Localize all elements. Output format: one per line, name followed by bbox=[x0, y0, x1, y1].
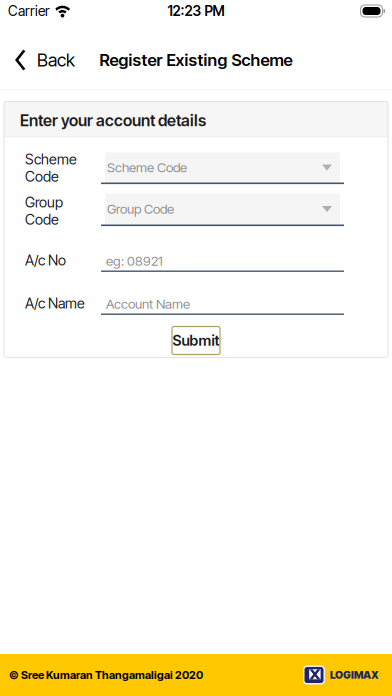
staticText: A/c No bbox=[25, 251, 66, 269]
staticText: Enter your account details bbox=[20, 111, 206, 130]
button[interactable]: Submit bbox=[172, 326, 220, 354]
staticText: Submit bbox=[172, 332, 219, 349]
staticText: Code bbox=[25, 168, 59, 185]
staticText: Carrier bbox=[8, 2, 50, 19]
button[interactable]: Back bbox=[0, 40, 85, 80]
staticText: Back bbox=[37, 49, 75, 71]
staticText: © Sree Kumaran Thangamaligai 2020 bbox=[9, 668, 203, 682]
button[interactable]: eg: 08921 bbox=[101, 251, 344, 272]
staticText: Scheme Code bbox=[107, 159, 187, 175]
staticText: Code bbox=[25, 211, 59, 228]
staticText: Register Existing Scheme bbox=[99, 50, 292, 70]
staticText: Scheme bbox=[25, 150, 77, 168]
button[interactable]: Account Name bbox=[101, 294, 344, 315]
staticText: eg: 08921 bbox=[106, 253, 163, 269]
button[interactable]: Group Code bbox=[101, 193, 344, 226]
staticText: A/c Name bbox=[25, 294, 85, 312]
staticText: Group bbox=[25, 193, 63, 211]
staticText: Account Name bbox=[106, 296, 190, 312]
staticText: Group Code bbox=[107, 201, 174, 217]
staticText: LOGIMAX bbox=[330, 669, 379, 681]
staticText: 12:23 PM bbox=[167, 2, 224, 19]
button[interactable]: Scheme Code bbox=[101, 152, 344, 184]
